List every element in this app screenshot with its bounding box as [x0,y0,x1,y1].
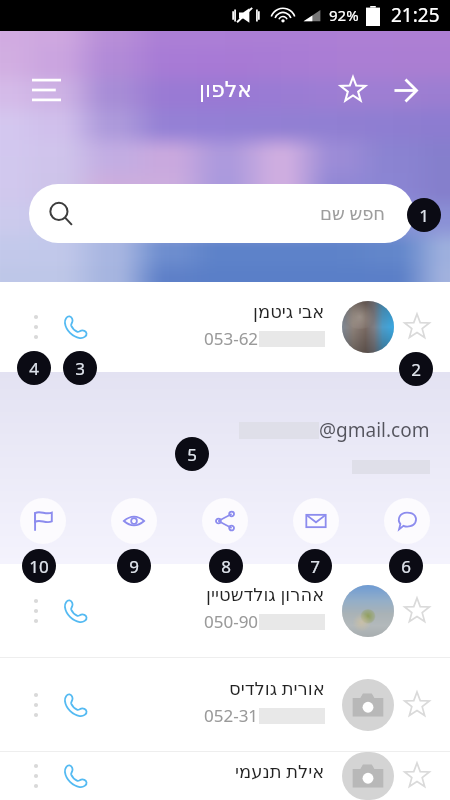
button[interactable]: Favorite [397,591,437,631]
button[interactable]: Forward [383,68,427,112]
button[interactable]: Call [54,589,98,633]
staticText: 1 [419,204,429,227]
button[interactable]: More options [18,758,54,794]
staticText: אילת תנעמי [235,759,325,784]
staticText: 9 [129,555,139,578]
button[interactable]: More options [18,309,54,345]
button[interactable]: חפש שם [29,184,414,243]
staticText: 10 [29,555,49,578]
button[interactable]: Favorites [331,68,375,112]
staticText: 21:25 [391,2,440,28]
button[interactable]: Favorite [397,756,437,796]
button[interactable]: Flag [20,498,66,544]
staticText: 6 [401,555,411,578]
staticText: 052-31 [204,704,259,727]
button[interactable]: Contact photo [342,752,394,800]
staticText: אורית גולדיס [229,676,325,701]
button[interactable]: Call [54,754,98,798]
staticText: 053-62 [204,327,259,350]
button[interactable]: Favorite [397,307,437,347]
button[interactable]: Share [202,498,248,544]
staticText: 8 [221,555,231,578]
button[interactable]: Call [54,305,98,349]
button[interactable]: Contact photo [342,301,394,353]
staticText: 7 [310,555,320,578]
staticText: חפש שם [320,201,386,226]
button[interactable]: More options [0,282,450,372]
button[interactable]: Menu [22,66,70,114]
button[interactable]: More options [18,593,54,629]
staticText: 5 [187,443,197,466]
staticText: אלפון [199,77,252,103]
staticText: אבי גיטמן [253,299,325,324]
button[interactable]: Email [293,498,339,544]
staticText: 3 [75,357,85,380]
staticText: אהרון גולדשטיין [206,582,325,607]
button[interactable]: Contact photo [342,585,394,637]
button[interactable]: Favorite [397,685,437,725]
staticText: 050-90 [204,610,259,633]
button[interactable]: More options [0,752,450,800]
button[interactable]: Call [54,683,98,727]
button[interactable]: View [111,498,157,544]
staticText: @gmail.com [319,417,430,443]
button[interactable]: Message [384,498,430,544]
staticText: 2 [411,358,421,381]
button[interactable]: More options [0,564,450,657]
staticText: 92% [329,5,359,25]
button[interactable]: More options [18,687,54,723]
staticText: 4 [29,357,39,380]
button[interactable]: Contact photo [342,679,394,731]
button[interactable]: More options [0,658,450,751]
